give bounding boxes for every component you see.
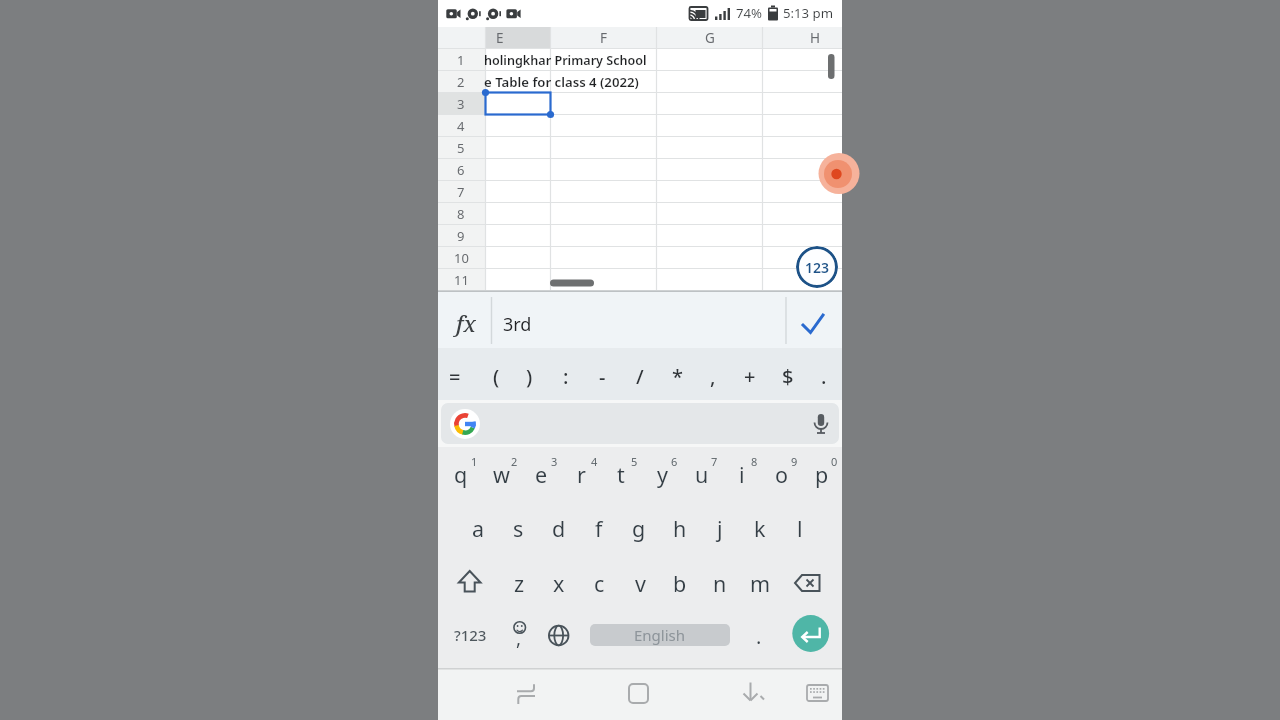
staticText: z: [514, 569, 525, 598]
staticText: n: [713, 569, 727, 598]
staticText: =: [449, 363, 461, 390]
staticText: 9: [791, 454, 798, 469]
button[interactable]: l: [780, 502, 820, 554]
button[interactable]: p: [802, 448, 842, 500]
staticText: i: [739, 460, 745, 489]
staticText: 3: [457, 95, 465, 113]
staticText: 3: [551, 454, 558, 469]
button[interactable]: /: [622, 352, 658, 400]
button[interactable]: (: [478, 352, 514, 400]
staticText: t: [617, 460, 625, 489]
staticText: e Table for class 4 (2022): [484, 73, 639, 91]
button[interactable]: v: [620, 557, 660, 609]
button[interactable]: z: [499, 557, 539, 609]
staticText: 123: [805, 258, 830, 277]
staticText: 2: [511, 454, 518, 469]
button[interactable]: s: [498, 502, 538, 554]
button[interactable]: a: [458, 502, 498, 554]
staticText: :: [563, 363, 569, 390]
staticText: 6: [671, 454, 678, 469]
staticText: b: [673, 569, 687, 598]
button[interactable]: [539, 612, 579, 659]
button[interactable]: .: [744, 619, 774, 653]
button[interactable]: [572, 668, 707, 720]
staticText: 7: [457, 183, 465, 201]
button[interactable]: ): [511, 352, 547, 400]
staticText: F: [600, 29, 608, 47]
staticText: r: [577, 460, 586, 489]
staticText: -: [599, 363, 606, 390]
staticText: H: [810, 29, 821, 47]
button[interactable]: n: [700, 557, 740, 609]
button[interactable]: w: [481, 448, 521, 500]
staticText: 5: [631, 454, 638, 469]
button[interactable]: o: [762, 448, 802, 500]
button[interactable]: [450, 557, 490, 609]
button[interactable]: [792, 615, 830, 653]
button[interactable]: k: [740, 502, 780, 554]
button[interactable]: =: [437, 352, 473, 400]
button[interactable]: e: [521, 448, 561, 500]
button[interactable]: t: [601, 448, 641, 500]
button[interactable]: c: [579, 557, 619, 609]
staticText: 2: [457, 73, 465, 91]
staticText: $: [782, 363, 794, 390]
button[interactable]: English: [590, 624, 730, 646]
button[interactable]: [707, 668, 842, 720]
button[interactable]: d: [539, 502, 579, 554]
staticText: ?123: [454, 625, 487, 645]
staticText: x: [553, 569, 565, 598]
staticText: .: [821, 363, 827, 390]
button[interactable]: j: [700, 502, 740, 554]
button[interactable]: r: [561, 448, 601, 500]
button[interactable]: y: [642, 448, 682, 500]
button[interactable]: x: [539, 557, 579, 609]
staticText: q: [454, 460, 468, 489]
button[interactable]: q: [441, 448, 481, 500]
button[interactable]: b: [660, 557, 700, 609]
staticText: 4: [591, 454, 598, 469]
staticText: ): [526, 363, 533, 390]
button[interactable]: +: [732, 352, 768, 400]
button[interactable]: 123: [796, 246, 838, 288]
staticText: 11: [454, 271, 469, 289]
staticText: 1: [457, 51, 465, 69]
button[interactable]: ,: [504, 623, 534, 653]
button[interactable]: *: [659, 352, 695, 400]
staticText: 7: [711, 454, 718, 469]
staticText: c: [594, 569, 605, 598]
button[interactable]: .: [806, 352, 842, 400]
staticText: v: [635, 569, 646, 598]
button[interactable]: h: [660, 502, 700, 554]
staticText: 1: [471, 454, 478, 469]
staticText: g: [632, 514, 646, 543]
button[interactable]: fx: [438, 292, 842, 348]
staticText: 3rd: [503, 312, 532, 337]
staticText: 4: [457, 117, 465, 135]
staticText: English: [634, 625, 686, 645]
button[interactable]: [438, 668, 572, 720]
staticText: holingkhar Primary School: [484, 52, 647, 69]
staticText: 8: [751, 454, 758, 469]
button[interactable]: [790, 557, 830, 609]
button[interactable]: i: [722, 448, 762, 500]
button[interactable]: [441, 403, 839, 444]
button[interactable]: [450, 409, 480, 439]
staticText: .: [756, 623, 762, 650]
staticText: h: [673, 514, 687, 543]
staticText: /: [636, 363, 644, 390]
button[interactable]: ?123: [446, 609, 494, 661]
button[interactable]: ,: [695, 352, 731, 400]
button[interactable]: f: [579, 502, 619, 554]
button[interactable]: -: [584, 352, 620, 400]
staticText: e: [535, 460, 548, 489]
button[interactable]: g: [619, 502, 659, 554]
staticText: ,: [710, 363, 716, 390]
staticText: 6: [457, 161, 465, 179]
staticText: 5:13 pm: [783, 4, 834, 22]
button[interactable]: m: [740, 557, 780, 609]
staticText: f: [595, 514, 603, 543]
button[interactable]: :: [548, 352, 584, 400]
button[interactable]: u: [682, 448, 722, 500]
button[interactable]: $: [770, 352, 806, 400]
